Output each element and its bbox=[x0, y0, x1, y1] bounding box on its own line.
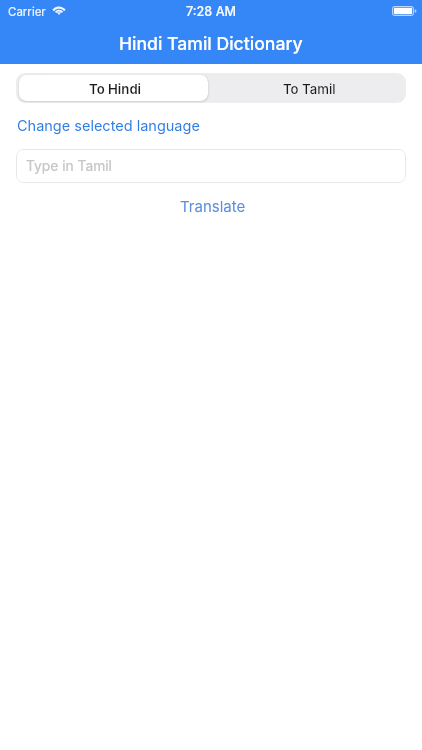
staticText: Translate bbox=[180, 197, 246, 215]
staticText: Type in Tamil bbox=[26, 158, 112, 175]
button[interactable]: To Tamil bbox=[211, 73, 406, 103]
staticText: 7:28 AM bbox=[186, 4, 237, 19]
button[interactable]: Change selected language bbox=[17, 117, 200, 135]
staticText: Carrier bbox=[8, 5, 46, 19]
staticText: To Tamil bbox=[283, 81, 336, 97]
button[interactable]: Type in Tamil bbox=[16, 149, 406, 183]
other: Battery full bbox=[392, 6, 417, 16]
staticText: Hindi Tamil Dictionary bbox=[119, 33, 303, 54]
button[interactable]: To Hindi bbox=[19, 75, 208, 101]
other: Wi-Fi signal bbox=[50, 4, 68, 15]
button[interactable]: Translate bbox=[178, 197, 248, 215]
staticText: Change selected language bbox=[17, 117, 200, 135]
staticText: To Hindi bbox=[89, 81, 142, 97]
